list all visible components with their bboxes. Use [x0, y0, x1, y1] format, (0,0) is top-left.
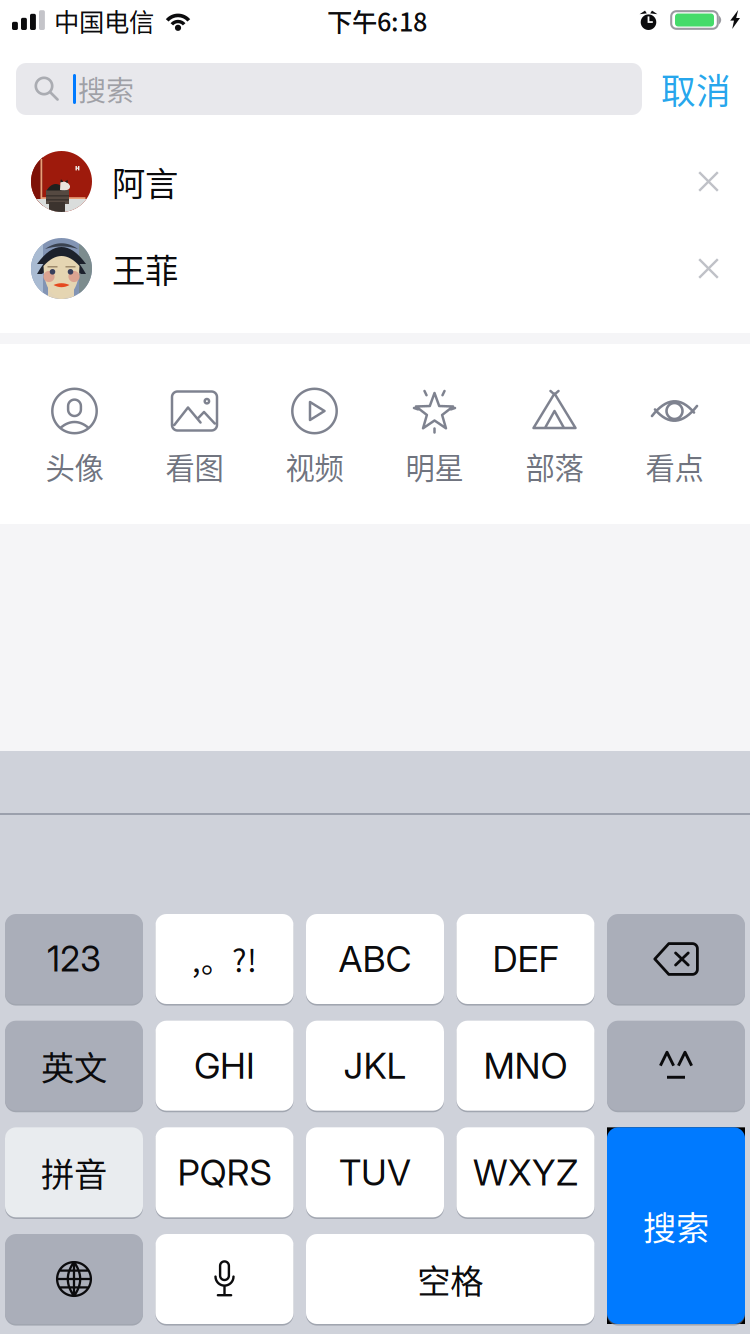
- button[interactable]: Delete: [607, 914, 745, 1004]
- staticText: 部落: [525, 445, 583, 487]
- staticText: 明星: [405, 445, 463, 487]
- staticText: 阿言: [112, 157, 178, 206]
- staticText: 空格: [417, 1255, 483, 1303]
- staticText: ,。?!: [192, 937, 257, 981]
- button[interactable]: Next keyboard: [5, 1234, 143, 1324]
- staticText: 视频: [285, 445, 343, 487]
- staticText: GHI: [194, 1044, 255, 1087]
- button[interactable]: Emoticons: [607, 1021, 745, 1111]
- staticText: JKL: [343, 1044, 406, 1087]
- button[interactable]: 明星: [374, 387, 494, 524]
- staticText: TUV: [339, 1151, 411, 1194]
- button[interactable]: TUV: [306, 1127, 444, 1217]
- staticText: 英文: [41, 1041, 107, 1090]
- button[interactable]: 空格: [306, 1234, 594, 1324]
- button[interactable]: 视频: [254, 387, 374, 524]
- button[interactable]: ,。?!: [155, 914, 293, 1004]
- button[interactable]: ABC: [306, 914, 444, 1004]
- button[interactable]: MNO: [456, 1021, 594, 1111]
- staticText: 下午6:18: [327, 2, 427, 39]
- button[interactable]: 英文: [5, 1021, 143, 1111]
- staticText: 头像: [45, 445, 103, 487]
- staticText: 拼音: [41, 1148, 107, 1196]
- button[interactable]: 取消: [642, 58, 750, 120]
- staticText: 看点: [645, 445, 703, 487]
- staticText: 搜索: [643, 1201, 709, 1250]
- button[interactable]: PQRS: [155, 1127, 293, 1217]
- button[interactable]: 拼音: [5, 1127, 143, 1217]
- staticText: WXYZ: [473, 1151, 578, 1194]
- staticText: 取消: [661, 64, 731, 114]
- button[interactable]: 看图: [134, 387, 254, 524]
- button[interactable]: 看点: [614, 387, 734, 524]
- button[interactable]: Dictation: [155, 1234, 293, 1324]
- staticText: 123: [47, 938, 101, 980]
- button[interactable]: WXYZ: [456, 1127, 594, 1217]
- staticText: PQRS: [177, 1151, 271, 1194]
- staticText: ABC: [338, 937, 411, 981]
- button[interactable]: 王菲: [0, 225, 750, 312]
- staticText: 搜索: [78, 69, 134, 109]
- staticText: 王菲: [112, 244, 178, 293]
- button[interactable]: 搜索: [607, 1127, 745, 1324]
- button[interactable]: DEF: [456, 914, 594, 1004]
- staticText: MNO: [483, 1044, 567, 1087]
- button[interactable]: 123: [5, 914, 143, 1004]
- button[interactable]: GHI: [155, 1021, 293, 1111]
- button[interactable]: JKL: [306, 1021, 444, 1111]
- button[interactable]: 头像: [14, 387, 134, 524]
- staticText: 看图: [165, 445, 223, 487]
- button[interactable]: 阿言: [0, 138, 750, 225]
- staticText: DEF: [492, 937, 558, 981]
- button[interactable]: 部落: [494, 387, 614, 524]
- staticText: 中国电信: [54, 2, 154, 39]
